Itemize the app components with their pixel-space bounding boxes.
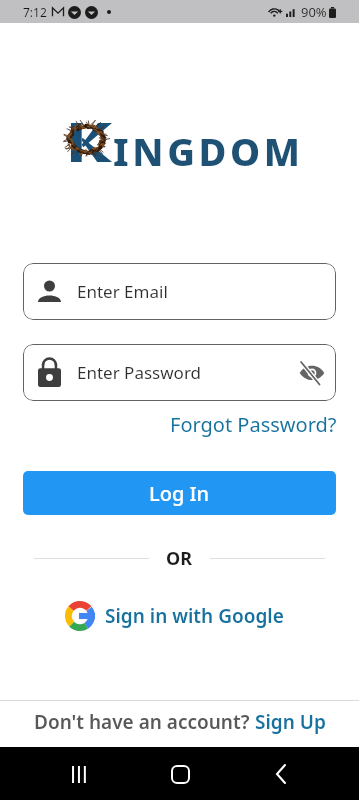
- button[interactable]: Recent apps: [54, 750, 102, 798]
- button[interactable]: Forgot Password?: [170, 409, 359, 440]
- button[interactable]: Home: [156, 750, 204, 798]
- button[interactable]: Back: [257, 750, 305, 798]
- button[interactable]: Show password: [299, 362, 325, 383]
- staticText: Enter Password: [77, 361, 202, 384]
- staticText: 90%: [301, 3, 327, 21]
- staticText: Don't have an account?: [34, 709, 255, 735]
- button[interactable]: Don't have an account?: [28, 705, 332, 739]
- staticText: Log In: [149, 480, 210, 507]
- staticText: INGDOM: [113, 125, 304, 177]
- button[interactable]: Enter Password: [23, 344, 336, 401]
- button[interactable]: Enter Email: [23, 263, 336, 320]
- staticText: OR: [166, 546, 193, 570]
- button[interactable]: Log In: [23, 471, 336, 515]
- staticText: 7:12: [23, 4, 47, 20]
- staticText: Sign Up: [255, 709, 326, 735]
- staticText: Enter Email: [77, 280, 168, 303]
- staticText: Sign in with Google: [105, 603, 284, 629]
- button[interactable]: Sign in with Google: [61, 598, 288, 634]
- staticText: Forgot Password?: [170, 411, 337, 438]
